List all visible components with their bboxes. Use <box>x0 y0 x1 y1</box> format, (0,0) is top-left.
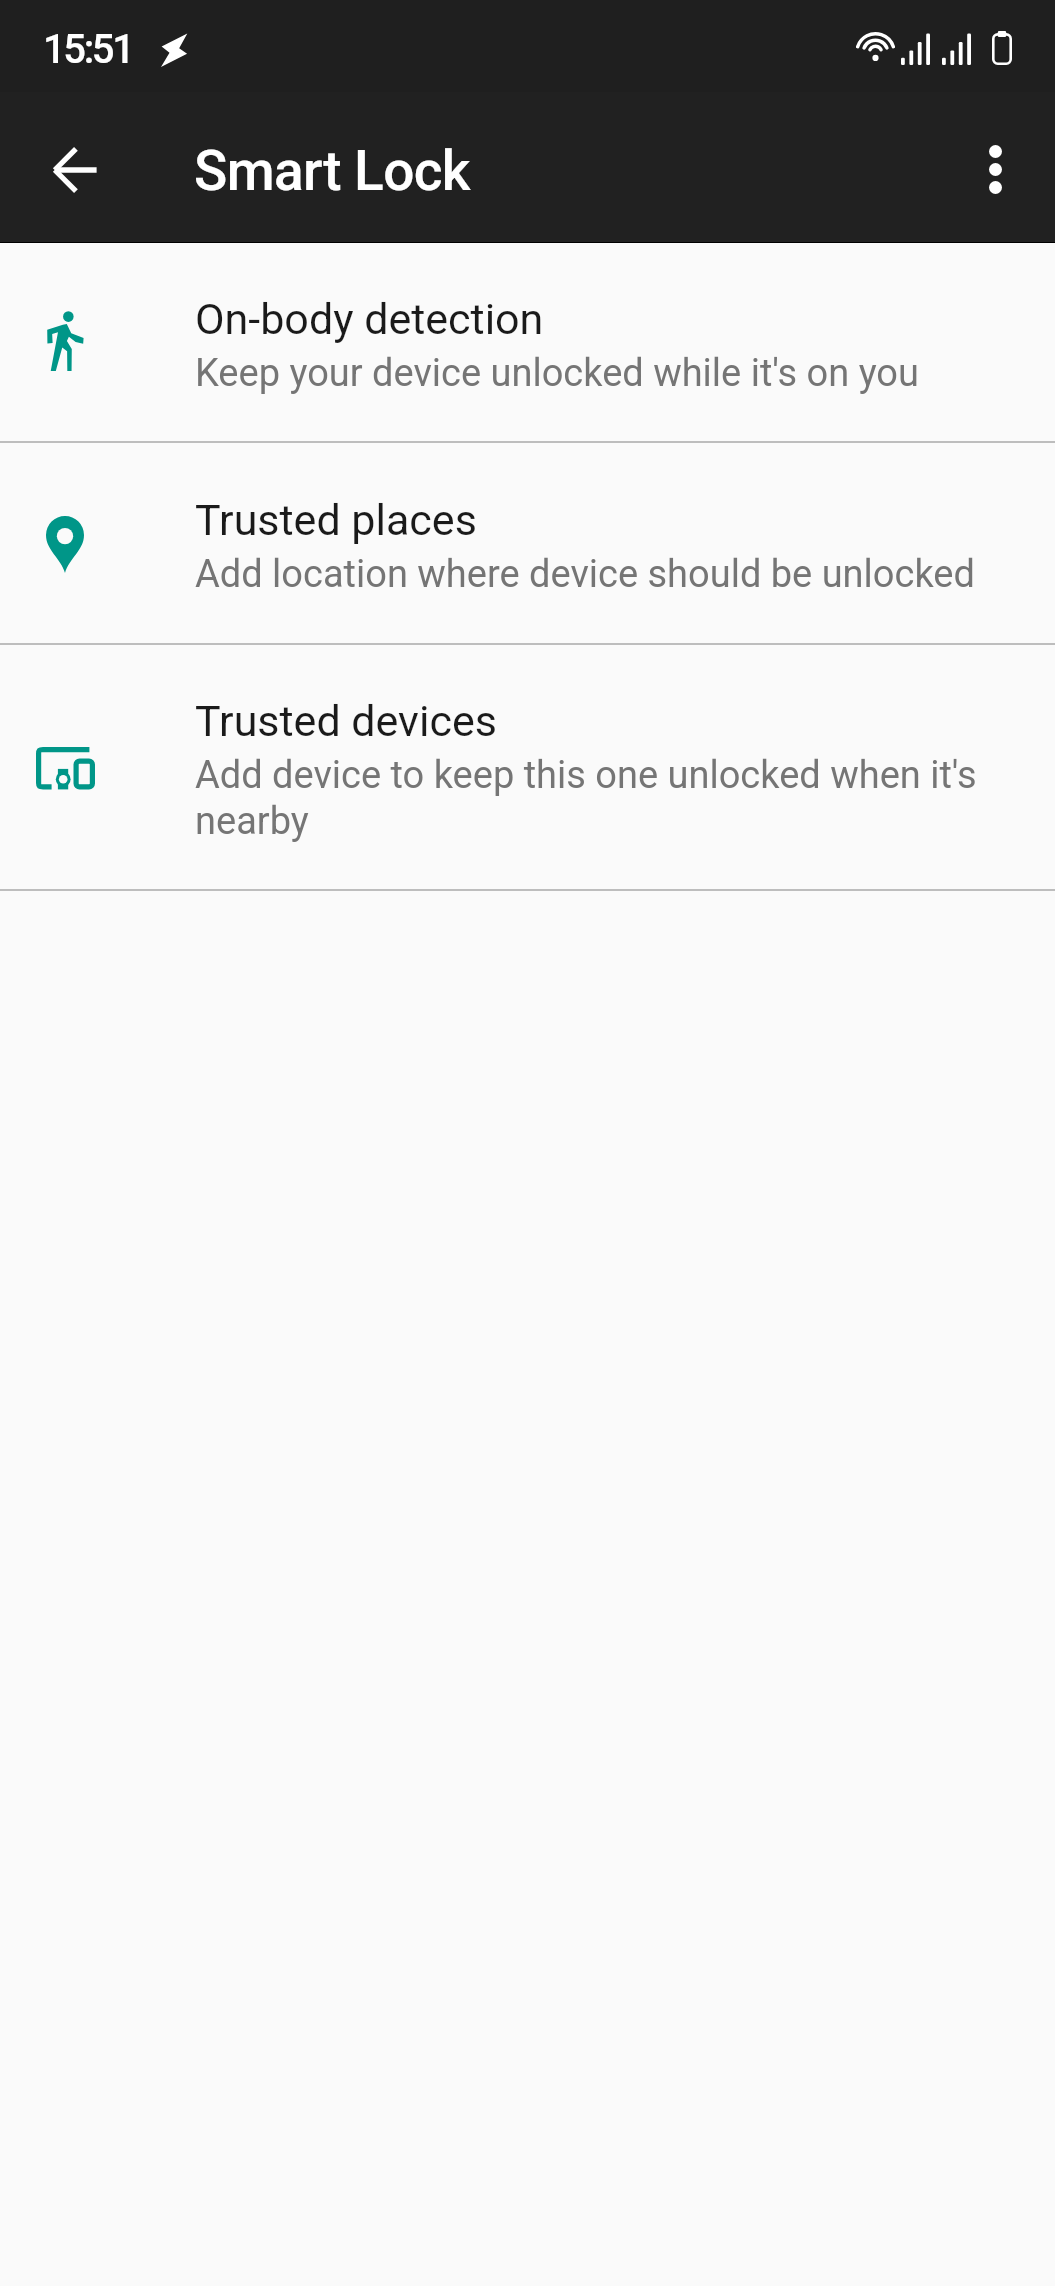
staticText: On-body detection <box>195 293 544 345</box>
staticText: 15:51 <box>43 26 133 73</box>
staticText: Keep your device unlocked while it's on … <box>195 350 919 396</box>
staticText: Trusted devices <box>195 695 497 747</box>
button[interactable]: On-body detection <box>0 243 1055 441</box>
button[interactable]: More options <box>951 125 1039 213</box>
staticText: Add device to keep this one unlocked whe… <box>195 752 1013 844</box>
button[interactable]: Back <box>31 126 119 214</box>
staticText: Trusted places <box>195 494 477 546</box>
button[interactable]: Trusted places <box>0 443 1055 643</box>
staticText: Add location where device should be unlo… <box>195 551 975 597</box>
staticText: Smart Lock <box>194 139 470 203</box>
button[interactable]: Trusted devices <box>0 645 1055 889</box>
